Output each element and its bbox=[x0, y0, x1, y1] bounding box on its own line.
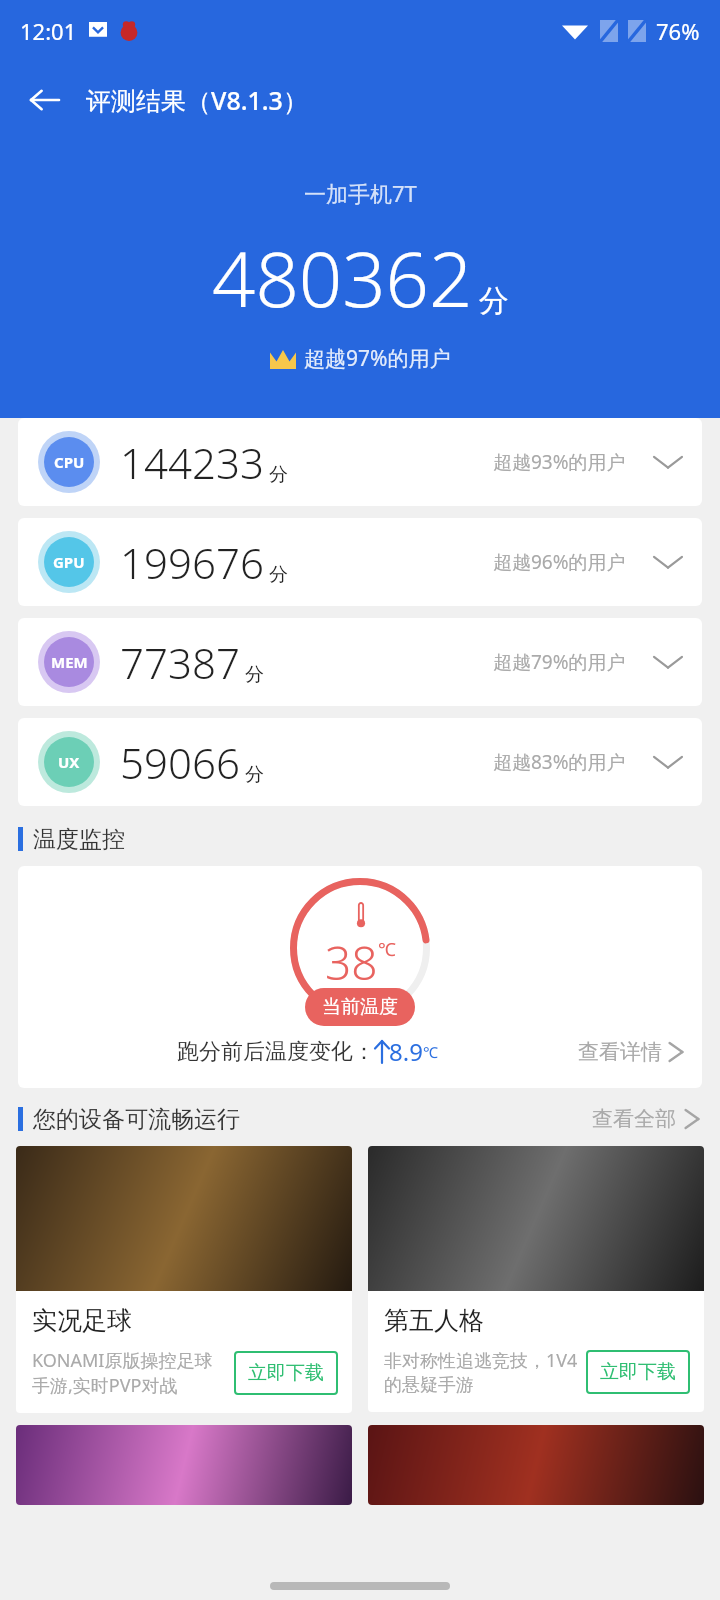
staticText: 分 bbox=[479, 282, 509, 320]
staticText: 12:01 bbox=[20, 16, 77, 46]
staticText: 76% bbox=[656, 16, 700, 46]
staticText: 超越96%的用户 bbox=[493, 549, 626, 575]
staticText: MEM bbox=[51, 652, 88, 672]
staticText: 480362 bbox=[212, 226, 473, 330]
staticText: 跑分前后温度变化： bbox=[177, 1038, 375, 1066]
staticText: 分 bbox=[245, 763, 264, 787]
button[interactable]: 立即下载 bbox=[586, 1350, 690, 1394]
button[interactable]: CPU bbox=[18, 418, 702, 506]
button[interactable]: 查看全部 bbox=[592, 1103, 702, 1135]
staticText: 立即下载 bbox=[600, 1360, 676, 1384]
staticText: KONAMI原版操控足球 手游,实时PVP对战 bbox=[32, 1348, 213, 1397]
staticText: 59066 bbox=[120, 734, 240, 791]
staticText: 温度监控 bbox=[33, 825, 125, 854]
button[interactable]: 38 bbox=[18, 866, 702, 1088]
staticText: UX bbox=[58, 752, 80, 772]
staticText: 199676 bbox=[120, 534, 264, 591]
staticText: 非对称性追逃竞技，1V4 的悬疑手游 bbox=[384, 1348, 578, 1396]
staticText: 您的设备可流畅运行 bbox=[33, 1105, 240, 1134]
staticText: 分 bbox=[269, 463, 288, 487]
staticText: GPU bbox=[53, 552, 85, 572]
button[interactable] bbox=[16, 1425, 352, 1505]
button[interactable]: MEM bbox=[18, 618, 702, 706]
staticText: 立即下载 bbox=[248, 1361, 324, 1385]
button[interactable] bbox=[368, 1425, 704, 1505]
staticText: 超越93%的用户 bbox=[493, 449, 626, 475]
staticText: 超越79%的用户 bbox=[493, 649, 626, 675]
button[interactable]: GPU bbox=[18, 518, 702, 606]
button[interactable]: 实况足球 bbox=[16, 1146, 352, 1413]
staticText: 超越83%的用户 bbox=[493, 749, 626, 775]
staticText: ℃ bbox=[378, 937, 396, 962]
staticText: 实况足球 bbox=[32, 1305, 132, 1336]
staticText: 查看全部 bbox=[592, 1106, 676, 1132]
staticText: 超越97%的用户 bbox=[304, 344, 451, 373]
staticText: 8.9 bbox=[389, 1035, 423, 1068]
staticText: ℃ bbox=[423, 1042, 438, 1062]
staticText: 评测结果（V8.1.3） bbox=[86, 83, 308, 117]
staticText: 77387 bbox=[120, 634, 240, 691]
staticText: 当前温度 bbox=[322, 995, 398, 1019]
button[interactable]: 第五人格 bbox=[368, 1146, 704, 1412]
staticText: 查看详情 bbox=[578, 1039, 662, 1065]
staticText: CPU bbox=[54, 452, 85, 472]
staticText: 分 bbox=[245, 663, 264, 687]
staticText: 第五人格 bbox=[384, 1305, 484, 1336]
staticText: 一加手机7T bbox=[304, 178, 417, 208]
staticText: 144233 bbox=[120, 434, 264, 491]
staticText: 38 bbox=[325, 931, 378, 994]
staticText: 分 bbox=[269, 563, 288, 587]
button[interactable]: UX bbox=[18, 718, 702, 806]
button[interactable]: 返回 bbox=[18, 73, 72, 127]
button[interactable]: 立即下载 bbox=[234, 1351, 338, 1395]
button[interactable]: 查看详情 bbox=[578, 1036, 686, 1068]
